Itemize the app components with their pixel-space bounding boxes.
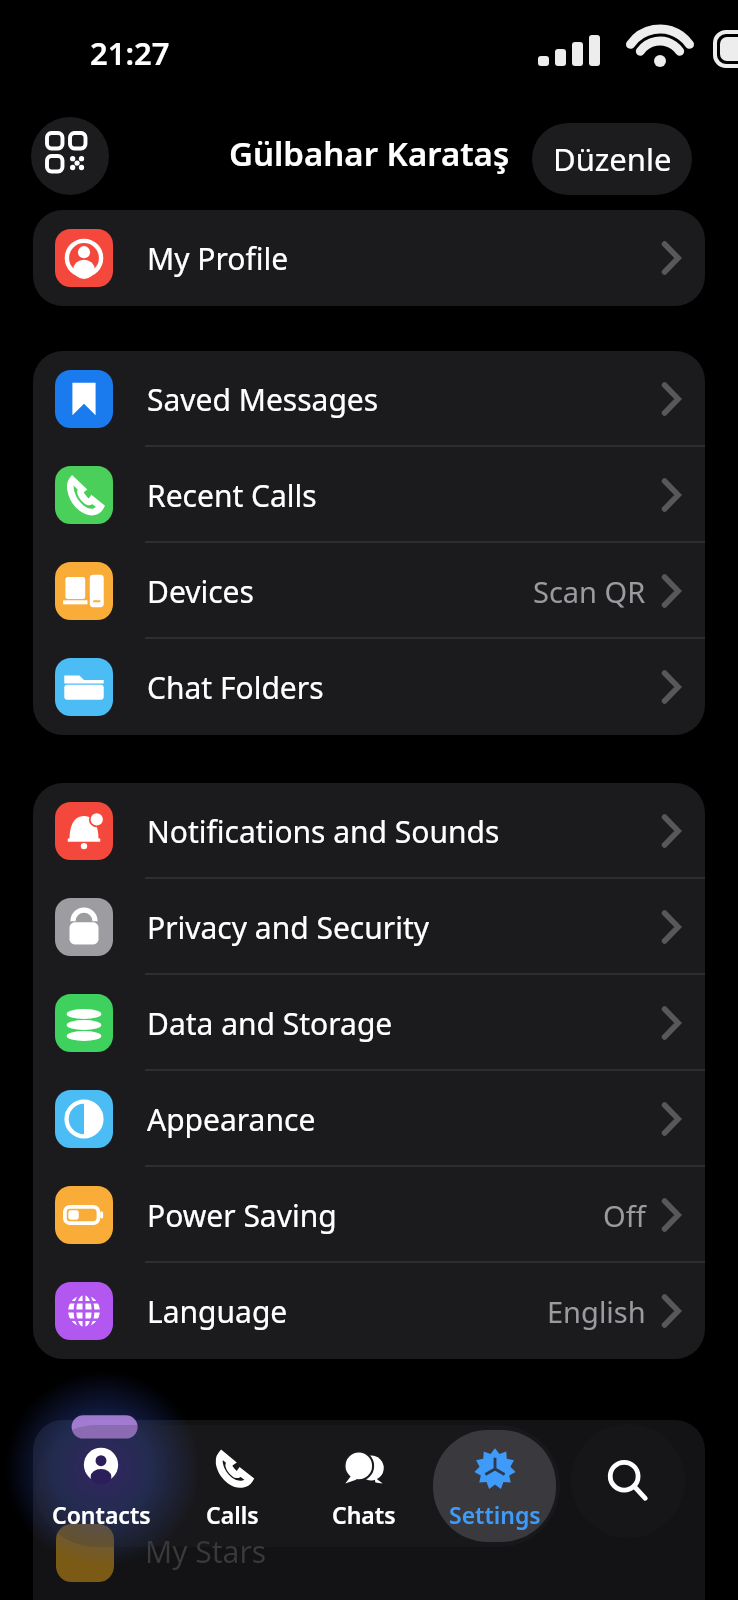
button[interactable]: Saved Messages [33,351,705,447]
staticText: My Stars [145,1531,267,1572]
staticText: Recent Calls [147,475,317,516]
button[interactable]: QR code [31,117,109,195]
staticText: Settings [449,1499,541,1530]
staticText: Devices [147,571,254,612]
staticText: Data and Storage [147,1003,393,1044]
button[interactable]: Chats [302,1430,425,1542]
button[interactable]: Recent Calls [33,447,705,543]
staticText: Düzenle [553,138,672,180]
button[interactable]: Calls [171,1430,294,1542]
staticText: Privacy and Security [147,907,430,948]
button[interactable]: Devices [33,543,705,639]
staticText: Appearance [147,1099,316,1140]
button[interactable]: Appearance [33,1071,705,1167]
staticText: Chat Folders [147,667,324,708]
staticText: 21:27 [90,32,170,74]
staticText: Chats [332,1499,396,1530]
button[interactable]: Settings [433,1430,556,1542]
button[interactable]: Notifications and Sounds [33,783,705,879]
staticText: My Profile [147,238,289,279]
staticText: Language [147,1291,288,1332]
staticText: Contacts [52,1499,151,1530]
button[interactable]: Chat Folders [33,639,705,735]
button[interactable]: Language [33,1263,705,1359]
staticText: Scan QR [533,572,646,611]
staticText: Gülbahar Karataş [229,131,510,176]
button[interactable]: Search [571,1424,685,1538]
staticText: Power Saving [147,1195,337,1236]
button[interactable]: Data and Storage [33,975,705,1071]
button[interactable]: Contacts [39,1430,163,1542]
staticText: Saved Messages [147,379,379,420]
button[interactable]: Privacy and Security [33,879,705,975]
staticText: Notifications and Sounds [147,811,500,852]
button[interactable]: Power Saving [33,1167,705,1263]
staticText: Off [603,1196,646,1235]
button[interactable]: My Profile [33,210,705,306]
staticText: English [547,1292,646,1331]
button[interactable]: Düzenle [532,123,692,195]
staticText: Calls [206,1499,259,1530]
